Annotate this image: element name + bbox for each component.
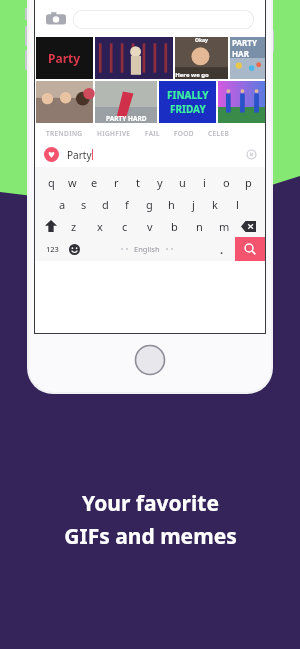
button[interactable]: x [87, 215, 112, 237]
button[interactable]: FOOD [174, 129, 208, 138]
staticText: y [157, 175, 163, 190]
staticText: z [71, 219, 77, 234]
staticText: FAIL [145, 129, 160, 138]
button[interactable]: 123 [41, 237, 63, 261]
button[interactable]: e [83, 171, 105, 193]
staticText: k [212, 197, 218, 212]
staticText: h [168, 197, 175, 212]
button[interactable]: FAIL [145, 129, 174, 138]
staticText: e [91, 175, 98, 190]
button[interactable]: k [204, 193, 226, 215]
button[interactable]: y [149, 171, 171, 193]
button[interactable]: v [137, 215, 162, 237]
button[interactable]: CELEB [208, 129, 244, 138]
button[interactable]: l [226, 193, 248, 215]
button[interactable]: Party [36, 37, 93, 79]
staticText: m [219, 219, 230, 234]
staticText: j [192, 197, 195, 212]
staticText: Here we go [175, 71, 209, 79]
button[interactable] [36, 81, 93, 123]
button[interactable]: Here we go [175, 37, 228, 79]
button[interactable]: m [212, 215, 237, 237]
button[interactable]: PARTY HAR [230, 37, 265, 79]
button[interactable]: u [171, 171, 193, 193]
button[interactable]: h [160, 193, 182, 215]
button[interactable]: Search [235, 237, 265, 261]
staticText: b [171, 219, 178, 234]
button[interactable]: Favorites [44, 147, 59, 162]
button[interactable]: j [182, 193, 204, 215]
button[interactable]: a [52, 193, 73, 215]
staticText: s [81, 197, 87, 212]
staticText: g [146, 197, 153, 212]
button[interactable]: n [187, 215, 212, 237]
button[interactable]: q [41, 171, 62, 193]
button[interactable]: w [62, 171, 83, 193]
staticText: x [97, 219, 103, 234]
staticText: t [136, 175, 140, 190]
button[interactable]: o [215, 171, 237, 193]
button[interactable]: b [162, 215, 187, 237]
button[interactable]: t [127, 171, 149, 193]
staticText: GIFs and memes [64, 522, 237, 551]
button[interactable]: TRENDING [46, 129, 97, 138]
staticText: . [220, 242, 224, 257]
staticText: w [68, 175, 77, 190]
staticText: p [245, 175, 252, 190]
staticText: FRIDAY [170, 102, 206, 116]
staticText: q [48, 175, 55, 190]
button[interactable] [73, 10, 254, 29]
staticText: r [114, 175, 119, 190]
button[interactable]: PARTY HARD [95, 81, 157, 123]
staticText: Party [67, 148, 92, 162]
button[interactable]: FINALLY [159, 81, 216, 123]
button[interactable] [95, 37, 173, 79]
staticText: PARTY HAR [232, 37, 265, 59]
button[interactable]: z [61, 215, 87, 237]
staticText: Party [48, 50, 81, 66]
button[interactable]: . [209, 237, 235, 261]
button[interactable]: Camera [46, 9, 66, 29]
staticText: l [236, 197, 239, 212]
staticText: a [59, 197, 66, 212]
staticText: c [122, 219, 128, 234]
staticText: PARTY HARD [106, 114, 147, 123]
staticText: HIGHFIVE [97, 129, 131, 138]
button[interactable]: Shift [41, 215, 61, 237]
button[interactable]: r [105, 171, 127, 193]
staticText: CELEB [208, 129, 230, 138]
staticText: i [203, 175, 206, 190]
button[interactable] [218, 81, 265, 123]
staticText: u [179, 175, 186, 190]
staticText: FINALLY [167, 88, 209, 102]
button[interactable]: i [193, 171, 215, 193]
staticText: o [223, 175, 230, 190]
staticText: f [125, 197, 129, 212]
staticText: n [196, 219, 203, 234]
button[interactable]: HIGHFIVE [97, 129, 145, 138]
staticText: 123 [46, 244, 59, 254]
button[interactable]: f [116, 193, 138, 215]
staticText: FOOD [174, 129, 194, 138]
button[interactable]: d [94, 193, 116, 215]
staticText: TRENDING [46, 129, 83, 138]
staticText: d [102, 197, 109, 212]
button[interactable]: g [138, 193, 160, 215]
button[interactable]: p [237, 171, 259, 193]
button[interactable]: Clear [247, 150, 256, 159]
button[interactable]: Emoji [63, 237, 85, 261]
button[interactable]: Backspace [237, 215, 259, 237]
button[interactable]: c [112, 215, 137, 237]
staticText: v [147, 219, 153, 234]
staticText: English [134, 244, 160, 254]
button[interactable]: s [73, 193, 94, 215]
staticText: Your favorite [82, 489, 219, 518]
staticText: Okay [195, 37, 208, 44]
button[interactable]: English [85, 237, 209, 261]
